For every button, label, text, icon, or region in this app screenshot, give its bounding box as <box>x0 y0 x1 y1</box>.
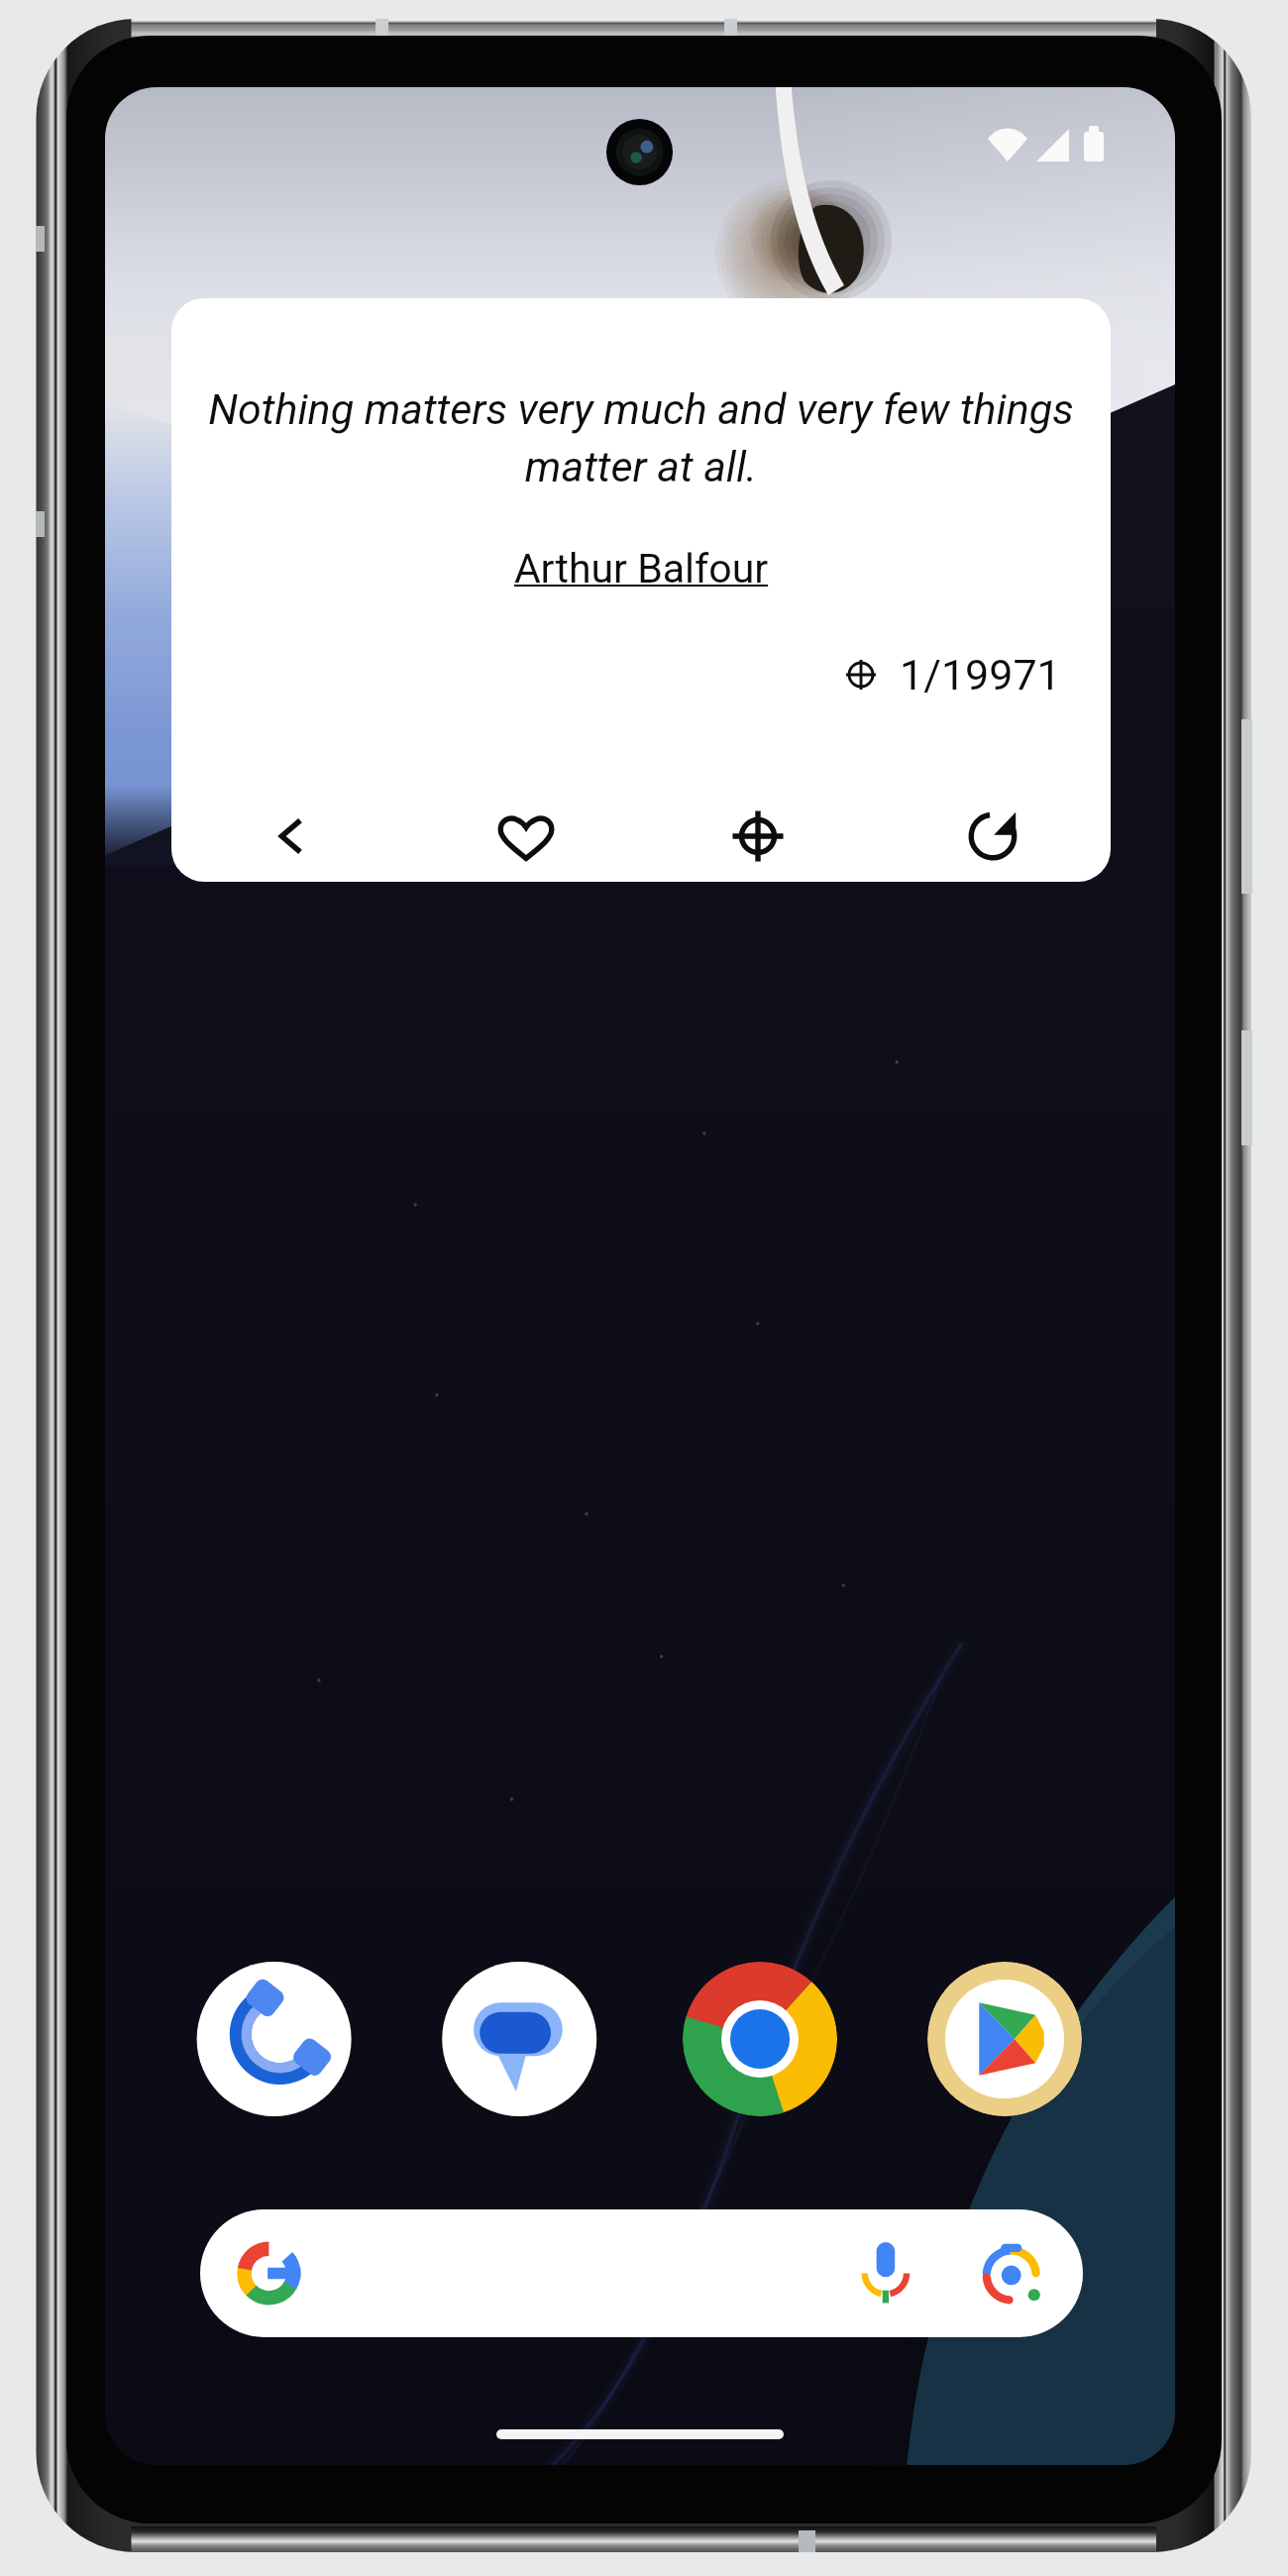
button[interactable]: Random quote <box>641 791 875 882</box>
button[interactable]: Play Store <box>927 1962 1082 2116</box>
button[interactable]: Chrome <box>683 1962 837 2116</box>
staticText: 1/19971 <box>900 650 1061 699</box>
button[interactable]: Favourite <box>411 791 641 882</box>
button[interactable]: Phone <box>197 1962 352 2116</box>
button[interactable]: Previous quote <box>171 791 411 882</box>
button[interactable]: Refresh <box>875 791 1111 882</box>
button[interactable]: Nothing matters very much and very few t… <box>171 298 1111 882</box>
staticText: Nothing matters very much and very few t… <box>179 384 1103 491</box>
button[interactable]: Messages <box>442 1962 596 2116</box>
staticText: Arthur Balfour <box>171 545 1111 592</box>
button[interactable] <box>200 2209 1083 2337</box>
